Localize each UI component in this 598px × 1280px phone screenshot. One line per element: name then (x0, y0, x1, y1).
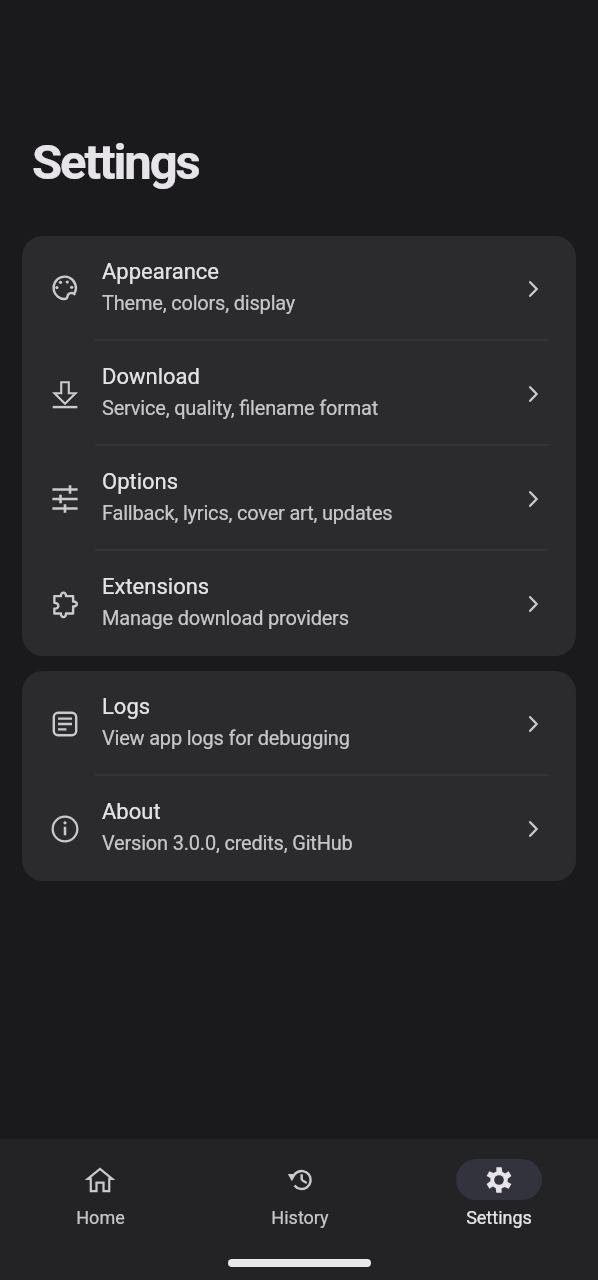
staticText: Manage download providers (102, 606, 349, 629)
staticText: Logs (102, 694, 151, 720)
staticText: Service, quality, filename format (102, 396, 379, 419)
button[interactable]: Download (22, 341, 576, 446)
button[interactable]: Home (0, 1139, 200, 1228)
staticText: About (102, 799, 161, 825)
button[interactable]: Settings (399, 1139, 598, 1228)
staticText: Fallback, lyrics, cover art, updates (102, 501, 393, 524)
staticText: Home (76, 1207, 125, 1228)
staticText: Appearance (102, 259, 220, 285)
staticText: Download (102, 364, 200, 390)
staticText: Settings (466, 1207, 532, 1228)
staticText: Settings (32, 134, 199, 191)
button[interactable]: Options (22, 446, 576, 551)
button[interactable]: Logs (22, 671, 576, 776)
staticText: Extensions (102, 574, 210, 600)
staticText: Version 3.0.0, credits, GitHub (102, 831, 353, 854)
button[interactable]: Extensions (22, 551, 576, 656)
button[interactable]: Appearance (22, 236, 576, 341)
staticText: Theme, colors, display (102, 291, 296, 314)
button[interactable]: About (22, 776, 576, 881)
staticText: History (271, 1207, 329, 1228)
staticText: Options (102, 469, 179, 495)
staticText: View app logs for debugging (102, 726, 350, 749)
button[interactable]: History (200, 1139, 399, 1228)
